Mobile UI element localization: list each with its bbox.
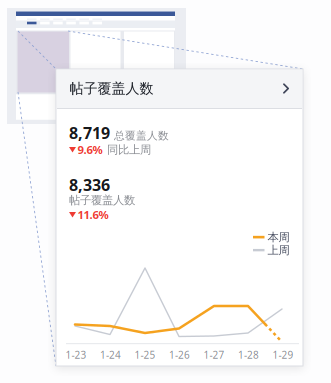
staticText: 1-25 — [134, 348, 155, 362]
staticText: 1-26 — [169, 348, 190, 362]
staticText: 1-27 — [203, 348, 224, 362]
staticText: 8,336 — [69, 174, 110, 196]
staticText: 1-28 — [238, 348, 259, 362]
staticText: 上周 — [267, 243, 289, 257]
staticText: 帖子覆盖人数 — [69, 80, 153, 97]
staticText: 帖子覆盖人数 — [69, 193, 135, 207]
staticText: 总覆盖人数 — [114, 129, 169, 142]
button[interactable]: 帖子覆盖人数 — [56, 69, 303, 108]
staticText: 1-29 — [272, 348, 293, 362]
staticText: 1-24 — [100, 348, 121, 362]
staticText: 1-23 — [65, 348, 86, 362]
staticText: 同比上周 — [107, 143, 151, 157]
staticText: 9.6% — [77, 142, 102, 157]
staticText: 本周 — [267, 230, 289, 244]
staticText: 8,719 — [69, 122, 110, 144]
staticText: 11.6% — [77, 207, 108, 222]
